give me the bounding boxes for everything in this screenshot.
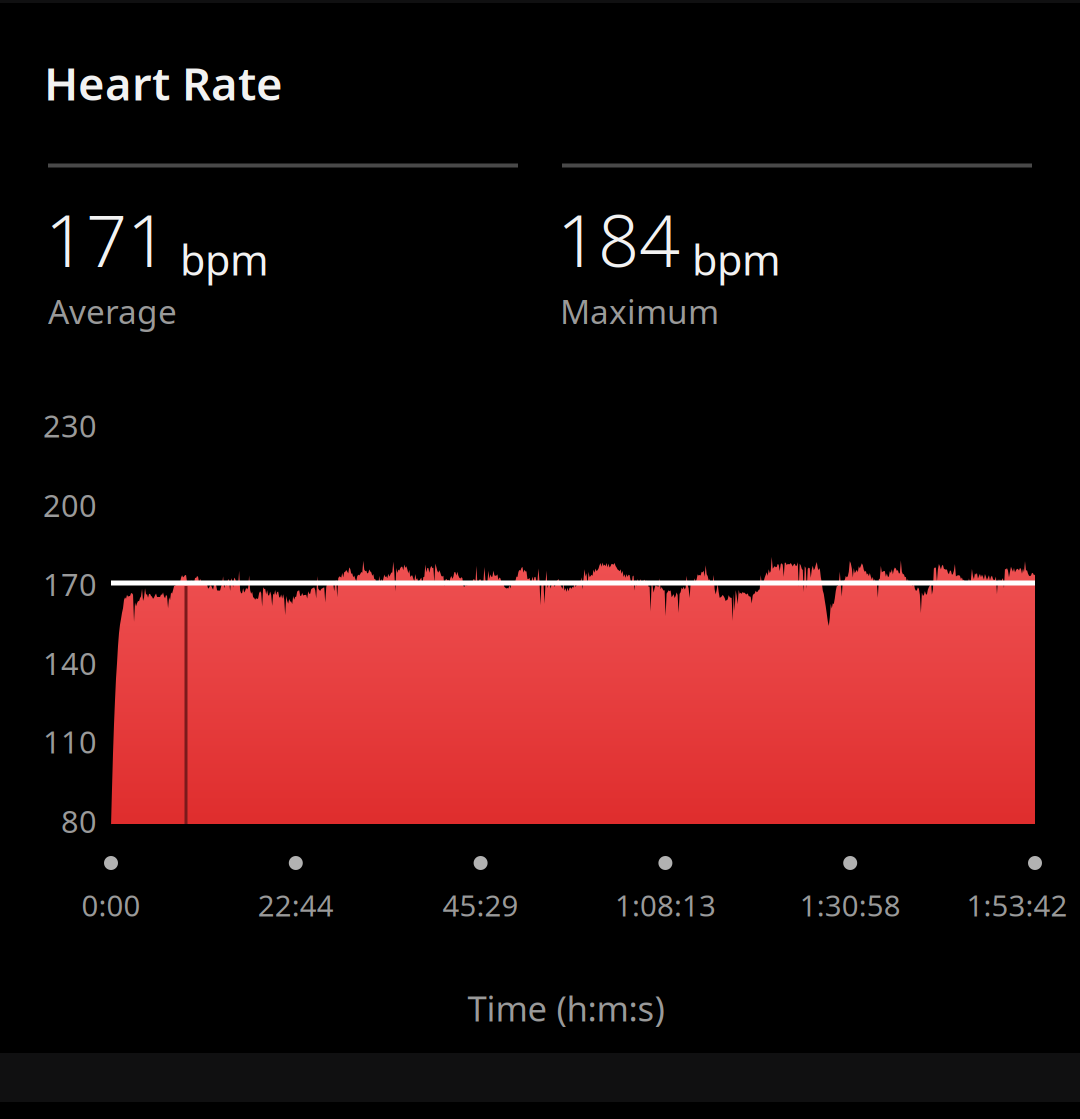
staticText: 45:29 xyxy=(443,885,519,924)
staticText: 110 xyxy=(43,721,97,762)
staticText: 1:53:42 xyxy=(966,885,1067,924)
staticText: 184 xyxy=(557,191,680,287)
staticText: 170 xyxy=(43,564,97,604)
staticText: 1:30:58 xyxy=(800,885,901,924)
staticText: Maximum xyxy=(560,289,719,333)
staticText: 140 xyxy=(43,643,97,683)
staticText: 80 xyxy=(61,801,97,841)
staticText: 200 xyxy=(43,485,97,525)
staticText: Heart Rate xyxy=(44,53,283,113)
staticText: 0:00 xyxy=(81,885,140,924)
staticText: bpm xyxy=(692,232,781,287)
staticText: bpm xyxy=(180,232,269,287)
staticText: Average xyxy=(48,289,177,333)
staticText: Time (h:m:s) xyxy=(467,985,664,1031)
staticText: 171 xyxy=(45,191,168,287)
staticText: 22:44 xyxy=(258,885,334,924)
staticText: 1:08:13 xyxy=(615,885,716,924)
staticText: 230 xyxy=(43,405,97,446)
